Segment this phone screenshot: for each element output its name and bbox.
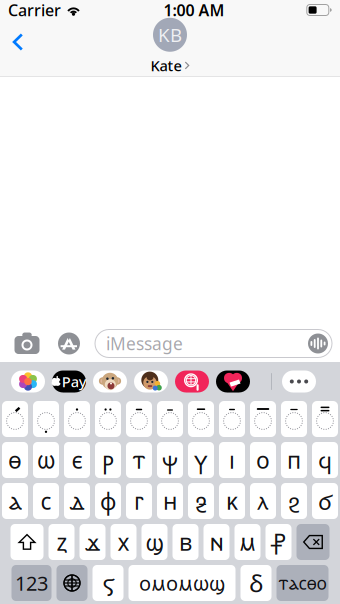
staticText: ⲃ — [179, 527, 192, 557]
button[interactable]: Diacritic — [157, 401, 183, 437]
button[interactable]: Memoji — [93, 370, 127, 392]
staticText: ⲉ — [71, 445, 82, 475]
button[interactable]: ⲕ — [219, 483, 245, 519]
button[interactable]: Audio message — [307, 333, 332, 354]
button[interactable]: Apple Pay — [52, 370, 86, 392]
staticText: ϥ — [318, 445, 332, 475]
button[interactable]: ⳨ — [265, 524, 291, 560]
button[interactable]: App Store — [53, 325, 85, 362]
staticText: Kate — [150, 56, 181, 75]
button[interactable]: ⲏ — [157, 483, 183, 519]
staticText: ⲁ — [8, 486, 21, 516]
staticText: ⲛ — [209, 527, 223, 557]
button[interactable]: ⲟⲙⲟⲙⲱϣ — [128, 565, 235, 601]
staticText: ϩ — [288, 486, 300, 516]
button[interactable]: ⲗ — [250, 483, 276, 519]
button[interactable]: ϭ — [312, 483, 338, 519]
button[interactable]: Delete — [296, 524, 329, 560]
button[interactable]: Next keyboard — [56, 565, 87, 601]
button[interactable]: Diacritic — [33, 401, 59, 437]
button[interactable]: ⲫ — [95, 483, 121, 519]
button[interactable]: ⲅ — [126, 483, 152, 519]
staticText: ⲏ — [163, 486, 177, 516]
staticText: ⲍ — [56, 527, 66, 557]
staticText: KB — [158, 22, 182, 47]
button[interactable]: Digital Touch — [216, 370, 250, 392]
button[interactable]: ⳝ — [240, 565, 271, 601]
staticText: ⲟⲙⲟⲙⲱϣ — [139, 569, 225, 597]
staticText: ⲑ — [8, 445, 22, 475]
button[interactable]: Photos — [11, 370, 45, 392]
button[interactable]: ⲣ — [95, 442, 121, 478]
button[interactable]: ⲙ — [234, 524, 260, 560]
button[interactable]: ⲧ — [126, 442, 152, 478]
button[interactable]: ⲡ — [281, 442, 307, 478]
staticText: ⲧ — [132, 445, 145, 475]
button[interactable]: Diacritic — [250, 401, 276, 437]
button[interactable]: ϥ — [312, 442, 338, 478]
button[interactable]: ⲯ — [157, 442, 183, 478]
staticText: ⲭ — [117, 527, 129, 557]
button[interactable]: ⲇ — [64, 483, 90, 519]
button[interactable]: ⲑ — [2, 442, 28, 478]
staticText: iMessage — [106, 332, 183, 355]
staticText: ϫ — [85, 527, 100, 557]
staticText: ⲡ — [287, 445, 301, 475]
staticText: ⳝ — [249, 567, 263, 599]
button[interactable]: Diacritic — [188, 401, 214, 437]
staticText: ⲱ — [37, 445, 55, 475]
staticText: ⲫ — [100, 486, 116, 516]
button[interactable]: ⳉ — [188, 483, 214, 519]
staticText: ⲩ — [195, 445, 207, 475]
button[interactable]: ⲥ — [33, 483, 59, 519]
staticText: ϭ — [318, 486, 332, 516]
button[interactable]: Diacritic — [281, 401, 307, 437]
staticText: ⲣ — [102, 445, 114, 475]
button[interactable]: ⲭ — [110, 524, 136, 560]
button[interactable]: More — [282, 370, 316, 392]
staticText: ⲟ — [256, 445, 270, 475]
button[interactable]: ϫ — [79, 524, 105, 560]
button[interactable]: KB — [125, 20, 215, 73]
button[interactable]: ⲋ — [92, 565, 123, 601]
button[interactable]: Diacritic — [2, 401, 28, 437]
button[interactable]: Memoji — [134, 370, 168, 392]
button[interactable]: 123 — [11, 565, 51, 601]
staticText: ⲯ — [162, 445, 178, 475]
button[interactable]: Diacritic — [126, 401, 152, 437]
staticText: ⲥ — [40, 486, 51, 516]
button[interactable]: Diacritic — [312, 401, 338, 437]
button[interactable]: ϣ — [141, 524, 167, 560]
staticText: ⲗ — [257, 486, 268, 516]
button[interactable]: ⲛ — [203, 524, 229, 560]
button[interactable]: Camera — [7, 325, 47, 362]
staticText: Pay — [62, 372, 87, 391]
button[interactable]: Images — [175, 370, 209, 392]
staticText: 123 — [15, 570, 48, 596]
staticText: Carrier — [8, 0, 61, 21]
button[interactable]: ⲓ — [219, 442, 245, 478]
staticText: ⳨ — [270, 527, 286, 557]
staticText: ⳉ — [195, 486, 207, 516]
button[interactable]: Diacritic — [95, 401, 121, 437]
button[interactable]: ⲱ — [33, 442, 59, 478]
button[interactable]: ⲍ — [48, 524, 74, 560]
staticText: ⲓ — [229, 445, 235, 475]
staticText: ⲅ — [134, 486, 144, 516]
button[interactable]: ⲧⲁⲥⲑⲟ — [276, 565, 328, 601]
button[interactable]: Shift — [10, 524, 43, 560]
button[interactable]: ϩ — [281, 483, 307, 519]
staticText: ⲙ — [239, 527, 256, 557]
button[interactable]: ⲩ — [188, 442, 214, 478]
staticText: ϣ — [145, 527, 163, 557]
staticText: ⲇ — [69, 486, 84, 516]
button[interactable]: ⲁ — [2, 483, 28, 519]
button[interactable]: Diacritic — [64, 401, 90, 437]
staticText: ⲕ — [226, 486, 238, 516]
staticText: ⲋ — [102, 567, 113, 599]
button[interactable]: Diacritic — [219, 401, 245, 437]
button[interactable]: ⲃ — [172, 524, 198, 560]
button[interactable]: Back — [0, 24, 36, 60]
button[interactable]: ⲉ — [64, 442, 90, 478]
button[interactable]: ⲟ — [250, 442, 276, 478]
